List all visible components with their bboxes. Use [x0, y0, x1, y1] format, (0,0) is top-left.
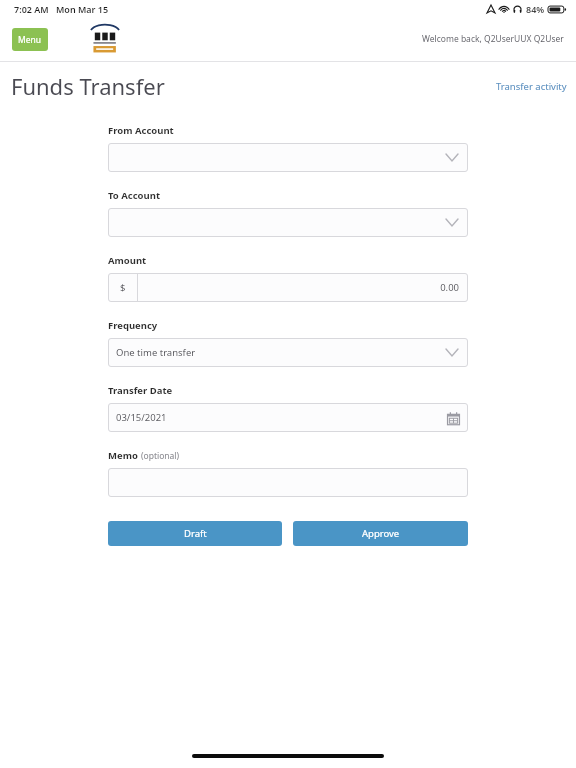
staticText: (optional) — [141, 450, 180, 462]
staticText: 7:02 AM — [14, 3, 49, 15]
staticText: 84% — [526, 3, 545, 15]
button[interactable]: Menu — [12, 28, 48, 51]
staticText: Transfer activity — [496, 80, 567, 93]
staticText: Frequency — [108, 319, 158, 332]
button[interactable]: ESL Federal Credit Union logo — [88, 23, 122, 55]
staticText: 03/15/2021 — [116, 411, 167, 424]
button[interactable] — [108, 208, 468, 237]
staticText: Memo — [108, 449, 138, 462]
staticText: Mon Mar 15 — [56, 3, 109, 15]
staticText: From Account — [108, 124, 174, 137]
staticText: Welcome back, Q2UserUUX Q2User — [422, 33, 564, 45]
staticText: Funds Transfer — [11, 71, 165, 101]
staticText: Menu — [18, 34, 42, 46]
staticText: To Account — [108, 189, 161, 202]
staticText: Approve — [362, 527, 400, 540]
button[interactable]: Pick date — [446, 411, 460, 425]
staticText: One time transfer — [116, 346, 196, 359]
staticText: Draft — [184, 527, 207, 540]
staticText: Amount — [108, 254, 147, 267]
button[interactable]: Transfer activity — [496, 80, 567, 93]
staticText: Transfer Date — [108, 384, 173, 397]
button[interactable]: 03/15/2021 — [108, 403, 468, 432]
button[interactable]: One time transfer — [108, 338, 468, 367]
staticText: $ — [120, 281, 126, 294]
button[interactable] — [108, 468, 468, 497]
button[interactable]: $ — [108, 273, 468, 302]
staticText: 0.00 — [440, 281, 459, 294]
button[interactable]: Approve — [293, 521, 468, 546]
button[interactable] — [108, 143, 468, 172]
button[interactable]: Draft — [108, 521, 282, 546]
